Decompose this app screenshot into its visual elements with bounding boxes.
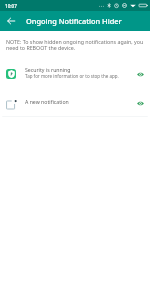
staticText: A new notification (25, 98, 69, 105)
staticText: 10:07 (5, 3, 17, 9)
staticText: Ongoing Notification Hider (26, 16, 122, 26)
button[interactable]: Hide notification (134, 97, 146, 109)
button[interactable]: Back (0, 11, 21, 31)
button[interactable]: A new notification (2, 89, 148, 117)
staticText: NOTE: To show hidden ongoing notificatio… (6, 38, 144, 51)
staticText: Security is running (25, 66, 71, 73)
staticText: Tap for more information or to stop the … (25, 73, 119, 79)
button[interactable]: Hide notification (134, 68, 146, 80)
button[interactable]: Security is running (2, 59, 148, 89)
